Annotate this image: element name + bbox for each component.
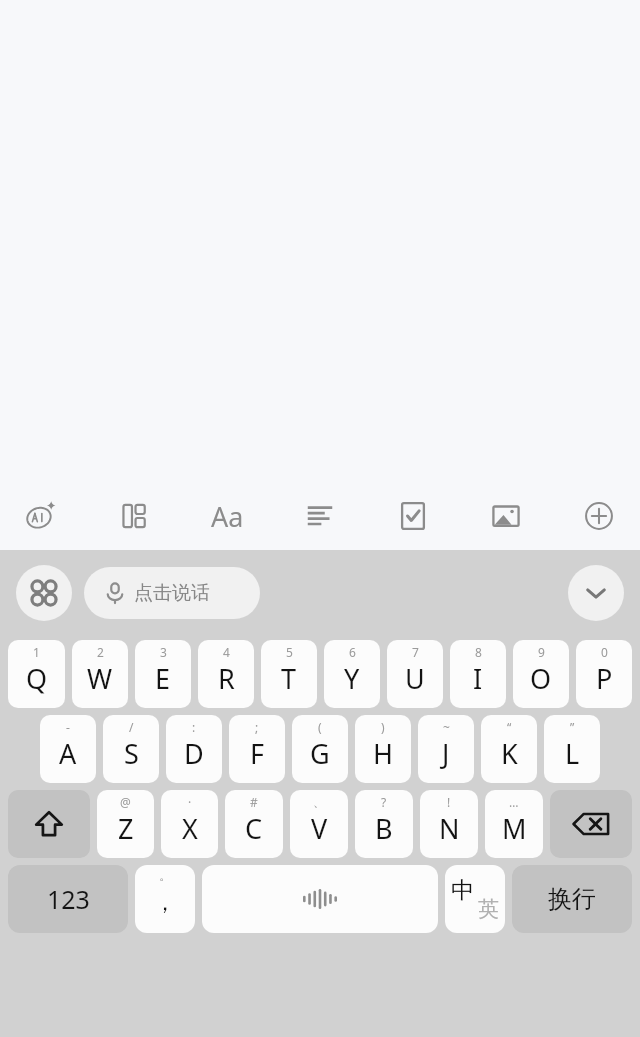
button[interactable]: Add: [572, 489, 626, 543]
staticText: G: [310, 735, 330, 772]
button[interactable]: Backspace: [550, 790, 632, 858]
staticText: A: [59, 735, 77, 772]
staticText: O: [530, 660, 552, 697]
staticText: 换行: [548, 884, 596, 914]
button[interactable]: Align text: [293, 489, 347, 543]
staticText: 5: [286, 644, 293, 660]
button[interactable]: 8: [450, 640, 506, 708]
staticText: Aa: [211, 498, 244, 535]
button[interactable]: 1: [8, 640, 65, 708]
staticText: V: [311, 810, 328, 847]
staticText: /: [129, 719, 134, 735]
button[interactable]: Hide keyboard: [568, 565, 624, 621]
button[interactable]: -: [40, 715, 96, 783]
button[interactable]: 7: [387, 640, 443, 708]
button[interactable]: ): [355, 715, 411, 783]
staticText: 7: [412, 644, 419, 660]
staticText: E: [155, 660, 171, 697]
staticText: ”: [570, 719, 575, 735]
staticText: X: [182, 810, 198, 847]
staticText: P: [596, 660, 613, 697]
button[interactable]: ·: [161, 790, 218, 858]
button[interactable]: …: [485, 790, 543, 858]
staticText: R: [218, 660, 235, 697]
button[interactable]: AI assistant: [14, 489, 68, 543]
staticText: I: [473, 660, 483, 697]
button[interactable]: /: [103, 715, 159, 783]
button[interactable]: Space: [202, 865, 438, 933]
button[interactable]: 5: [261, 640, 317, 708]
staticText: L: [565, 735, 580, 772]
staticText: Q: [26, 660, 48, 697]
button[interactable]: “: [481, 715, 537, 783]
staticText: @: [120, 794, 131, 810]
staticText: 3: [160, 644, 167, 660]
staticText: T: [281, 660, 297, 697]
staticText: (: [318, 719, 322, 735]
staticText: Z: [118, 810, 134, 847]
staticText: 8: [475, 644, 482, 660]
button[interactable]: 。: [135, 865, 195, 933]
staticText: …: [509, 794, 519, 810]
staticText: 、: [313, 794, 325, 809]
staticText: Y: [344, 660, 360, 697]
button[interactable]: 换行: [512, 865, 632, 933]
staticText: 123: [47, 882, 90, 916]
button[interactable]: @: [97, 790, 154, 858]
button[interactable]: Shift: [8, 790, 90, 858]
button[interactable]: :: [166, 715, 222, 783]
button[interactable]: 2: [72, 640, 128, 708]
staticText: -: [66, 719, 70, 735]
button[interactable]: 9: [513, 640, 569, 708]
staticText: N: [439, 810, 460, 847]
staticText: ~: [443, 719, 450, 735]
staticText: 0: [601, 644, 608, 660]
staticText: J: [442, 735, 450, 772]
staticText: M: [502, 810, 527, 847]
staticText: 9: [538, 644, 545, 660]
button[interactable]: #: [225, 790, 283, 858]
staticText: D: [184, 735, 204, 772]
staticText: 点击说话: [134, 581, 210, 605]
staticText: K: [501, 735, 518, 772]
button[interactable]: ~: [418, 715, 474, 783]
button[interactable]: ?: [355, 790, 413, 858]
button[interactable]: 6: [324, 640, 380, 708]
staticText: S: [124, 735, 139, 772]
button[interactable]: Keyboard menu: [16, 565, 72, 621]
button[interactable]: Insert image: [479, 489, 533, 543]
staticText: C: [245, 810, 263, 847]
staticText: 。: [159, 867, 172, 883]
staticText: ): [381, 719, 385, 735]
staticText: “: [507, 719, 512, 735]
staticText: W: [87, 660, 113, 697]
staticText: H: [373, 735, 394, 772]
button[interactable]: Text format: [200, 489, 254, 543]
staticText: :: [192, 719, 196, 735]
staticText: 中: [451, 876, 474, 905]
button[interactable]: 3: [135, 640, 191, 708]
staticText: ?: [381, 794, 387, 810]
staticText: #: [250, 794, 258, 810]
staticText: 6: [349, 644, 356, 660]
button[interactable]: Switch Chinese English: [445, 865, 505, 933]
staticText: B: [375, 810, 393, 847]
button[interactable]: 0: [576, 640, 632, 708]
button[interactable]: ;: [229, 715, 285, 783]
staticText: 英: [478, 896, 499, 922]
button[interactable]: Layout: [107, 489, 161, 543]
button[interactable]: ”: [544, 715, 600, 783]
staticText: U: [405, 660, 425, 697]
staticText: !: [447, 794, 451, 810]
button[interactable]: 123: [8, 865, 128, 933]
staticText: 2: [97, 644, 104, 660]
button[interactable]: 点击说话: [84, 567, 260, 619]
button[interactable]: 4: [198, 640, 254, 708]
staticText: ·: [188, 794, 192, 810]
button[interactable]: 、: [290, 790, 348, 858]
staticText: 4: [223, 644, 230, 660]
button[interactable]: (: [292, 715, 348, 783]
button[interactable]: !: [420, 790, 478, 858]
button[interactable]: Checklist: [386, 489, 440, 543]
staticText: ，: [154, 889, 176, 917]
